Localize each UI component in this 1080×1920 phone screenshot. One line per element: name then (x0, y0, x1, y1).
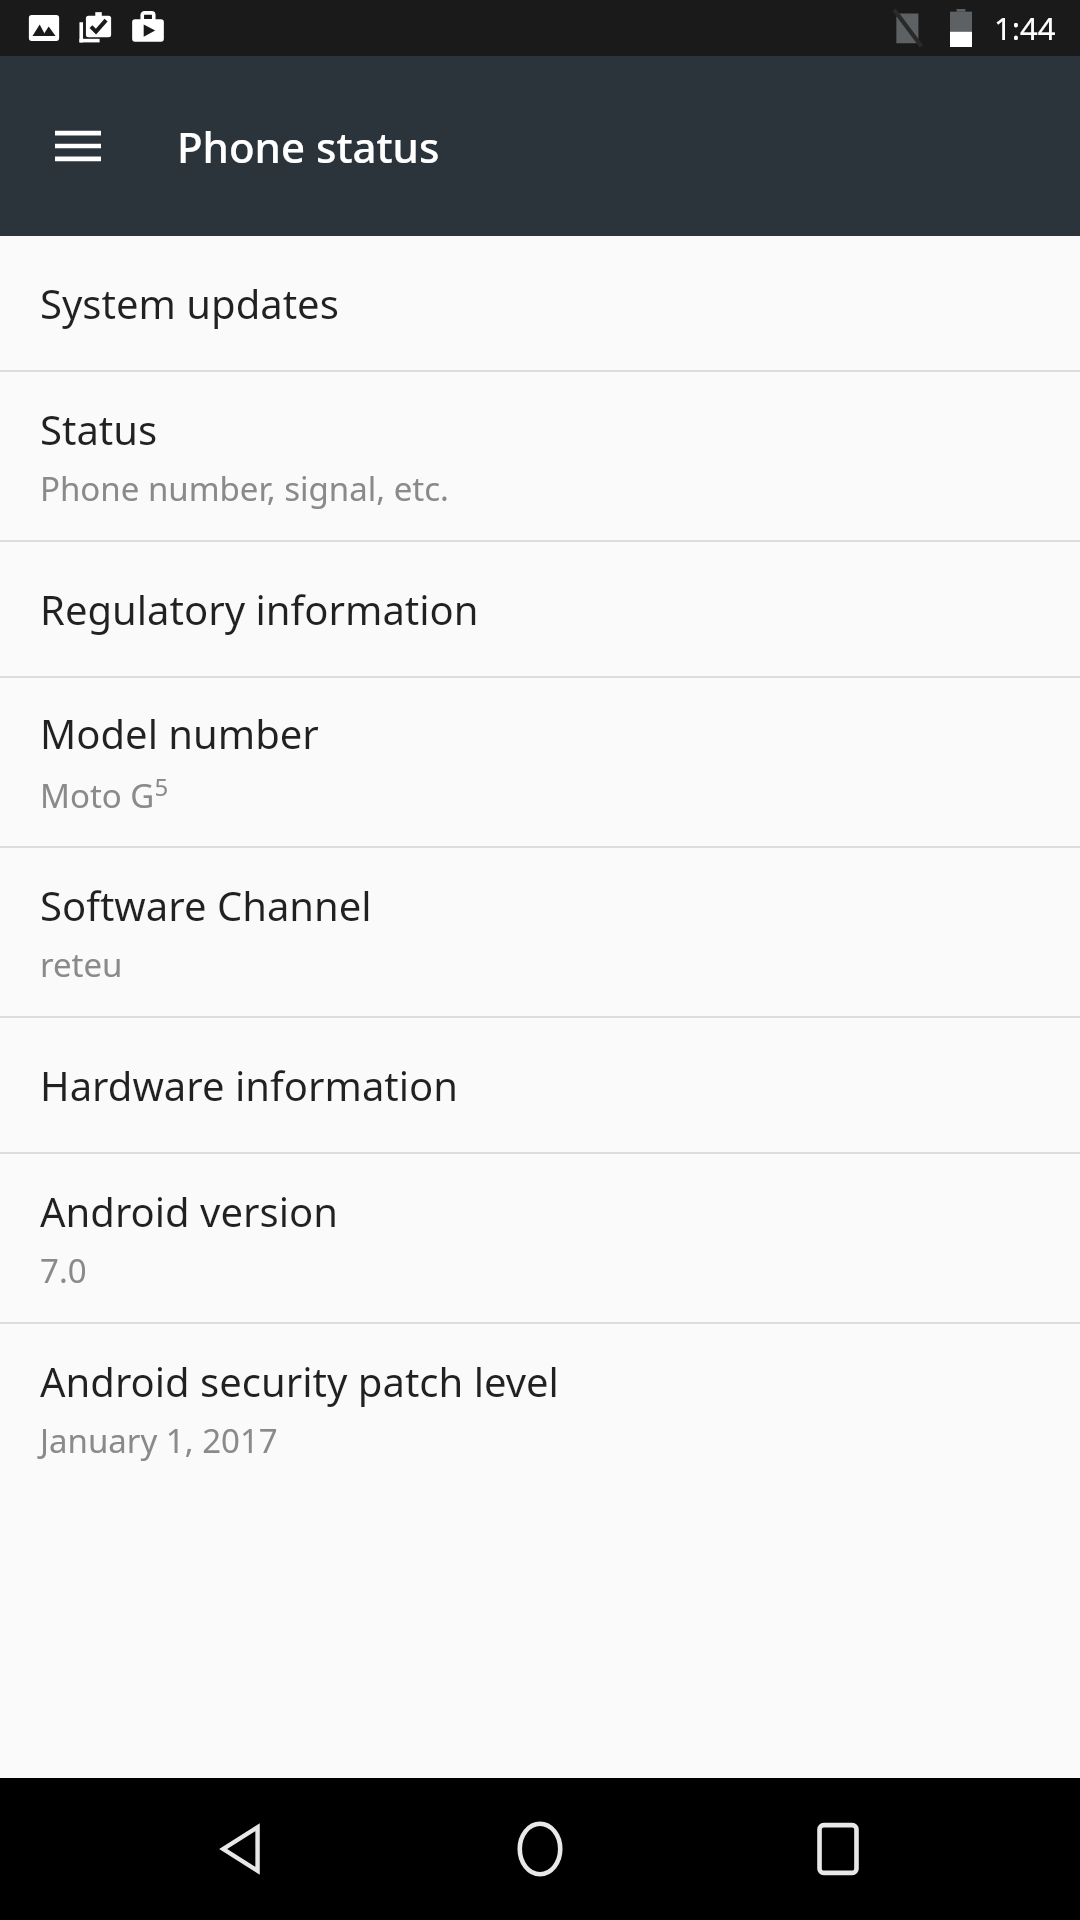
staticText: Moto G5 (40, 770, 169, 818)
staticText: Phone status (177, 118, 440, 175)
button[interactable]: Regulatory information (0, 542, 1080, 676)
staticText: reteu (40, 942, 123, 987)
button[interactable]: Software Channel (0, 848, 1080, 1016)
staticText: System updates (40, 276, 339, 330)
staticText: 7.0 (40, 1248, 87, 1293)
staticText: 1:44 (994, 7, 1056, 49)
button[interactable]: Back (188, 1794, 298, 1904)
button[interactable]: Recent apps (783, 1794, 893, 1904)
staticText: Android version (40, 1184, 338, 1238)
button[interactable]: Status (0, 372, 1080, 540)
staticText: Software Channel (40, 878, 372, 932)
staticText: Android security patch level (40, 1354, 559, 1408)
button[interactable]: Android version (0, 1154, 1080, 1322)
staticText: Status (40, 402, 158, 456)
button[interactable]: Hardware information (0, 1018, 1080, 1152)
staticText: Hardware information (40, 1058, 458, 1112)
staticText: January 1, 2017 (40, 1418, 278, 1463)
staticText: Regulatory information (40, 582, 479, 636)
button[interactable]: Home (485, 1794, 595, 1904)
staticText: Phone number, signal, etc. (40, 466, 449, 511)
button[interactable]: Model number (0, 678, 1080, 846)
button[interactable]: Android security patch level (0, 1324, 1080, 1492)
button[interactable]: Open navigation menu (28, 96, 128, 196)
staticText: Model number (40, 706, 319, 760)
button[interactable]: System updates (0, 236, 1080, 370)
